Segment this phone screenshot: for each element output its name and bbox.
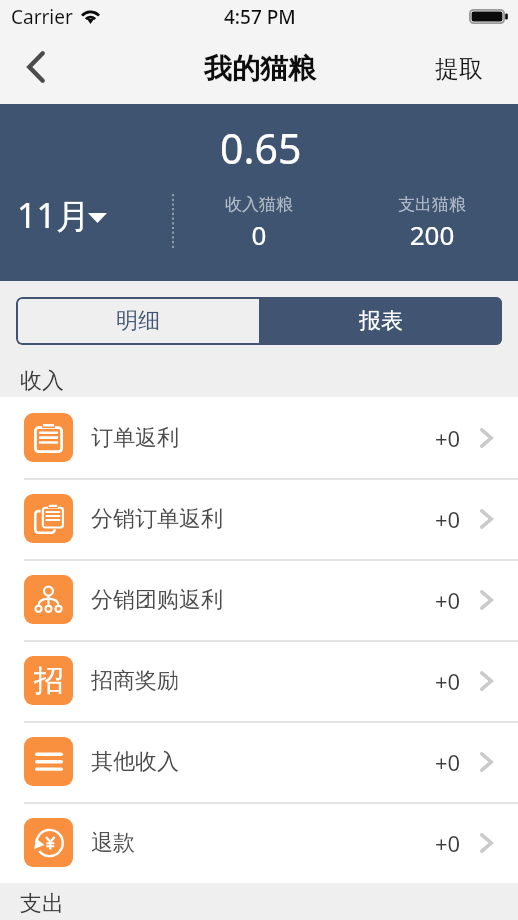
staticText: Carrier — [11, 4, 73, 30]
staticText: +0 — [435, 828, 461, 858]
staticText: 4:57 PM — [224, 4, 296, 30]
staticText: +0 — [435, 423, 461, 453]
staticText: 我的猫粮 — [204, 51, 316, 86]
staticText: 其他收入 — [91, 748, 179, 776]
staticText: 报表 — [359, 307, 403, 335]
staticText: 收入 — [20, 367, 64, 395]
staticText: 订单返利 — [91, 424, 179, 452]
staticText: 招 — [34, 662, 64, 700]
staticText: 分销团购返利 — [91, 586, 223, 614]
staticText: 退款 — [91, 829, 135, 857]
button[interactable]: 订单返利 — [0, 397, 518, 478]
staticText: 0 — [189, 217, 329, 252]
staticText: 招商奖励 — [91, 667, 179, 695]
button[interactable]: 分销订单返利 — [0, 478, 518, 559]
staticText: +0 — [435, 504, 461, 534]
staticText: 200 — [362, 217, 502, 252]
button[interactable]: 明细 — [16, 297, 259, 345]
button[interactable]: 招 — [0, 640, 518, 721]
staticText: 0.65 — [220, 120, 302, 176]
staticText: 分销订单返利 — [91, 505, 223, 533]
button[interactable]: 退款 — [0, 802, 518, 883]
staticText: 提取 — [435, 54, 483, 84]
staticText: +0 — [435, 747, 461, 777]
button[interactable]: Back — [6, 40, 64, 104]
button[interactable]: 提取 — [417, 40, 518, 104]
button[interactable]: 11月 — [0, 194, 160, 250]
staticText: +0 — [435, 585, 461, 615]
staticText: 支出 — [20, 890, 64, 918]
staticText: 支出猫粮 — [362, 194, 502, 215]
staticText: 11月 — [17, 192, 90, 238]
staticText: +0 — [435, 666, 461, 696]
button[interactable]: 报表 — [259, 297, 502, 345]
staticText: 明细 — [116, 307, 160, 335]
button[interactable]: 其他收入 — [0, 721, 518, 802]
button[interactable]: 分销团购返利 — [0, 559, 518, 640]
staticText: 收入猫粮 — [189, 194, 329, 215]
